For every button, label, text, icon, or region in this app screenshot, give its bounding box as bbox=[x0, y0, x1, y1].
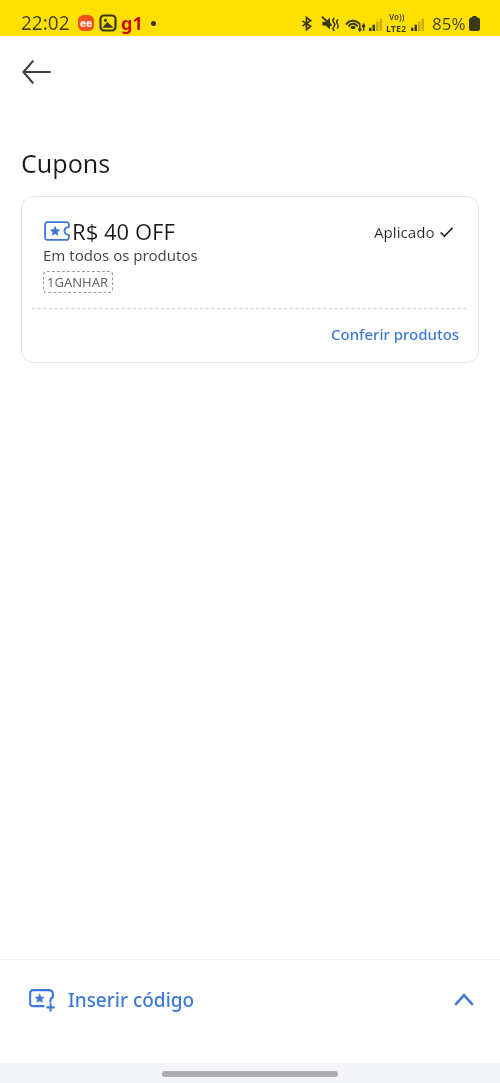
staticText: 1GANHAR bbox=[47, 273, 109, 291]
staticText: g1 bbox=[121, 11, 143, 36]
staticText: Vo)) bbox=[389, 11, 405, 22]
staticText: Inserir código bbox=[68, 987, 195, 1013]
staticText: Cupons bbox=[21, 146, 111, 180]
staticText: 85% bbox=[432, 12, 466, 35]
staticText: LTE2 bbox=[386, 22, 407, 34]
button[interactable]: Back bbox=[12, 48, 60, 96]
staticText: Em todos os produtos bbox=[43, 245, 198, 265]
staticText: ee bbox=[80, 16, 92, 30]
button[interactable]: R$ 40 OFF bbox=[21, 196, 479, 363]
staticText: Aplicado bbox=[374, 222, 435, 242]
staticText: 22:02 bbox=[21, 10, 70, 36]
staticText: R$ 40 OFF bbox=[72, 216, 175, 246]
button[interactable]: Inserir código bbox=[0, 960, 500, 1063]
button[interactable]: Collapse bbox=[446, 982, 482, 1018]
button[interactable]: Conferir produtos bbox=[331, 324, 460, 344]
